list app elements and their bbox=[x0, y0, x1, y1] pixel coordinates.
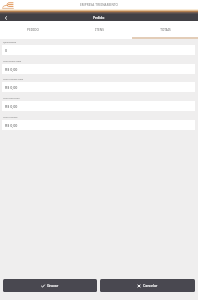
staticText: Cancelar bbox=[143, 283, 158, 288]
staticText: Pedido bbox=[93, 15, 105, 20]
staticText: 0 bbox=[5, 48, 8, 53]
button[interactable]: R$ 0,00 bbox=[2, 82, 195, 92]
button[interactable]: Cancelar bbox=[100, 279, 195, 292]
staticText: R$ 0,00 bbox=[5, 67, 18, 72]
staticText: Gravar bbox=[47, 283, 59, 288]
staticText: TOTAIS bbox=[160, 28, 171, 32]
button[interactable]: PEDIDO bbox=[0, 21, 66, 39]
button[interactable]: ITENS bbox=[66, 21, 132, 39]
button[interactable]: Back bbox=[0, 14, 12, 21]
button[interactable]: R$ 0,00 bbox=[2, 120, 195, 130]
button[interactable]: 0 bbox=[2, 45, 195, 55]
staticText: Quantidade bbox=[3, 41, 16, 44]
staticText: PEDIDO bbox=[27, 28, 39, 32]
button[interactable]: Gravar bbox=[3, 279, 97, 292]
staticText: Valor Líquido Item bbox=[3, 78, 24, 81]
button[interactable]: R$ 0,00 bbox=[2, 64, 195, 74]
staticText: ITENS bbox=[95, 28, 104, 32]
staticText: R$ 0,00 bbox=[5, 123, 18, 128]
staticText: R$ 0,00 bbox=[5, 104, 18, 109]
staticText: Valor Líquido bbox=[3, 116, 18, 119]
staticText: R$ 0,00 bbox=[5, 85, 18, 90]
staticText: Valor Desconto bbox=[3, 97, 20, 100]
button[interactable]: TOTAIS bbox=[132, 21, 198, 39]
button[interactable]: R$ 0,00 bbox=[2, 101, 195, 111]
other: App logo bbox=[2, 1, 14, 9]
staticText: Valor Bruto Item bbox=[3, 60, 22, 63]
staticText: EMPRESA TREINAMENTO bbox=[80, 3, 119, 7]
